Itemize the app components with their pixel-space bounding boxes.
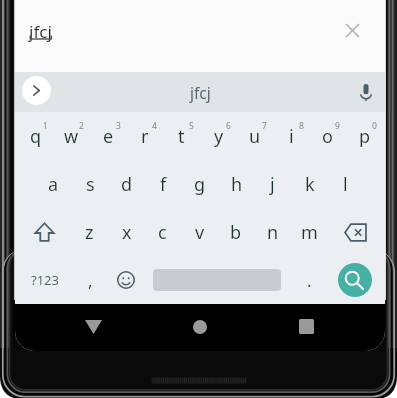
button[interactable]: r [126,112,163,160]
staticText: p [359,124,371,149]
button[interactable]: Back [68,304,118,349]
staticText: g [194,172,206,197]
staticText: f [160,172,167,197]
staticText: s [86,172,95,197]
staticText: l [343,172,348,197]
staticText: o [322,124,333,149]
staticText: n [267,220,279,245]
staticText: 0 [372,120,377,132]
staticText: 3 [116,120,121,132]
staticText: u [249,124,261,149]
staticText: 9 [335,120,340,132]
button[interactable]: Voice input [351,77,381,107]
staticText: e [103,124,114,149]
staticText: i [289,124,294,149]
button[interactable]: Show more suggestions [22,76,51,105]
button[interactable]: x [108,208,145,256]
staticText: 8 [299,120,304,132]
staticText: a [48,172,59,197]
button[interactable]: ?123 [20,256,70,304]
staticText: , [88,269,93,292]
button[interactable]: k [291,160,328,208]
button[interactable]: Search [332,256,378,304]
button[interactable]: j [254,160,291,208]
staticText: 1 [43,120,48,132]
staticText: v [195,220,205,245]
staticText: 7 [262,120,267,132]
staticText: 6 [226,120,231,132]
staticText: x [122,220,132,245]
button[interactable]: , [72,256,108,304]
staticText: y [214,124,224,149]
staticText: d [121,172,133,197]
button[interactable]: i [273,112,310,160]
staticText: m [301,220,318,245]
button[interactable]: t [163,112,200,160]
button[interactable]: q [17,112,54,160]
button[interactable]: v [181,208,218,256]
staticText: . [307,269,312,292]
button[interactable]: c [144,208,181,256]
staticText: jfcj [190,82,211,103]
staticText: j [270,172,275,197]
staticText: b [230,220,242,245]
button[interactable]: u [236,112,273,160]
staticText: h [231,172,243,197]
button[interactable]: Clear text [338,16,367,45]
staticText: w [64,124,79,149]
staticText: 5 [189,120,194,132]
staticText: k [305,172,315,197]
button[interactable]: n [254,208,291,256]
button[interactable]: a [35,160,72,208]
button[interactable]: b [217,208,254,256]
button[interactable]: p [346,112,383,160]
button[interactable]: w [53,112,90,160]
button[interactable]: m [291,208,328,256]
button[interactable]: Space [144,256,290,304]
staticText: jfcj [29,20,52,43]
staticText: 2 [79,120,84,132]
button[interactable]: e [90,112,127,160]
button[interactable]: Shift [17,208,72,256]
button[interactable]: Backspace [328,208,383,256]
button[interactable]: . [291,256,327,304]
button[interactable]: Recents [281,304,331,349]
button[interactable]: Home [175,304,225,349]
button[interactable]: f [145,160,182,208]
staticText: t [178,124,185,149]
staticText: r [141,124,149,149]
button[interactable]: Emoji [108,256,144,304]
staticText: c [158,220,167,245]
button[interactable]: l [327,160,364,208]
button[interactable]: y [200,112,237,160]
button[interactable]: d [108,160,145,208]
button[interactable]: z [71,208,108,256]
button[interactable]: h [218,160,255,208]
staticText: ?123 [31,271,59,289]
button[interactable]: g [181,160,218,208]
staticText: q [30,124,42,149]
button[interactable]: o [309,112,346,160]
staticText: z [85,220,94,245]
staticText: 4 [152,120,157,132]
button[interactable]: s [72,160,109,208]
